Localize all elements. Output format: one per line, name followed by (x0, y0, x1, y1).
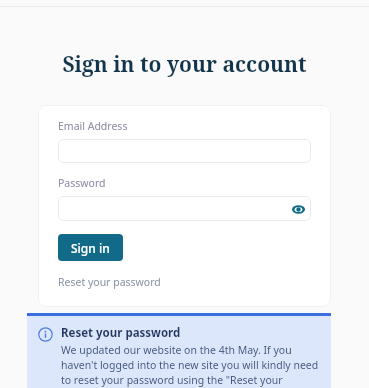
button[interactable] (58, 139, 311, 163)
staticText: Reset your password (61, 325, 181, 341)
staticText: Reset your password (58, 275, 161, 289)
staticText: Email Address (58, 119, 128, 133)
button[interactable]: Reset your password (58, 275, 161, 289)
staticText: Password (58, 176, 106, 190)
staticText: Sign in (71, 240, 110, 256)
staticText: Sign in to your account (0, 50, 369, 79)
button[interactable]: Sign in (58, 234, 123, 261)
staticText: We updated our website on the 4th May. I… (61, 343, 321, 388)
button[interactable]: Show password (290, 201, 306, 217)
button[interactable]: Show password (58, 196, 311, 221)
